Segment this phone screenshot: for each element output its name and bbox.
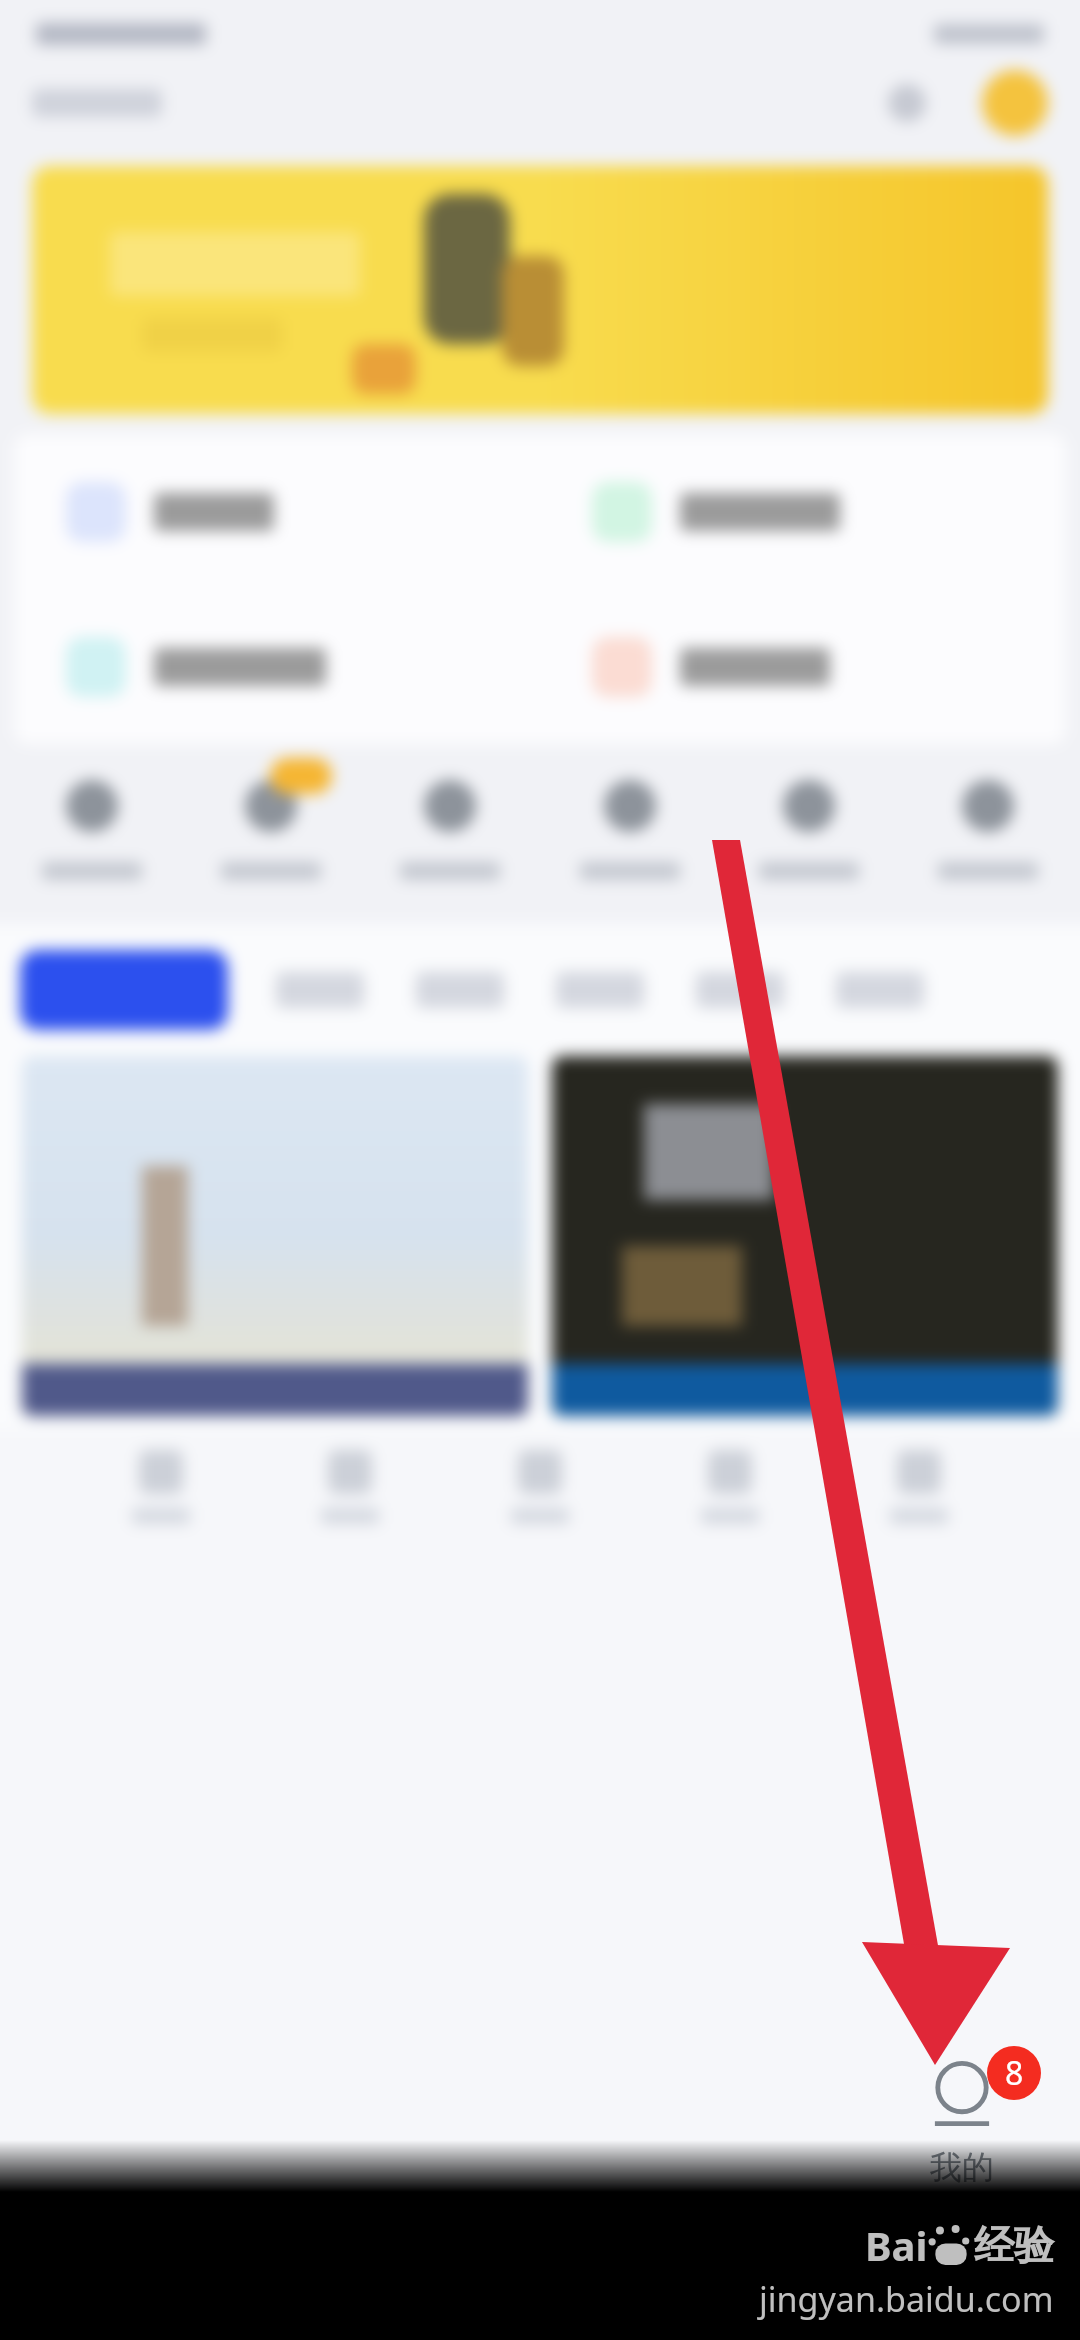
staticText: 8 [1005, 2051, 1024, 2095]
button[interactable] [416, 972, 504, 1008]
button[interactable]: 我的 [852, 2055, 1072, 2195]
button[interactable] [14, 434, 540, 589]
button[interactable] [723, 780, 895, 880]
button[interactable] [836, 972, 924, 1008]
button[interactable] [6, 780, 178, 880]
button[interactable] [511, 1450, 569, 1524]
button[interactable] [276, 972, 364, 1008]
staticText: 我的 [930, 2147, 994, 2187]
button[interactable] [540, 589, 1066, 744]
button[interactable] [185, 780, 357, 880]
button[interactable] [22, 1056, 528, 1416]
button[interactable] [540, 434, 1066, 589]
staticText: Bai [865, 2218, 928, 2272]
button[interactable] [14, 589, 540, 744]
button[interactable] [556, 972, 644, 1008]
staticText: 经验 [974, 2220, 1054, 2270]
button[interactable] [132, 1450, 190, 1524]
button[interactable] [20, 950, 228, 1030]
button[interactable] [552, 1056, 1058, 1416]
button[interactable] [321, 1450, 379, 1524]
button[interactable] [364, 780, 536, 880]
staticText: jingyan.baidu.com [759, 2276, 1054, 2322]
button[interactable] [902, 780, 1074, 880]
button[interactable] [890, 1450, 948, 1524]
button[interactable] [701, 1450, 759, 1524]
button[interactable] [544, 780, 716, 880]
button[interactable] [696, 972, 784, 1008]
